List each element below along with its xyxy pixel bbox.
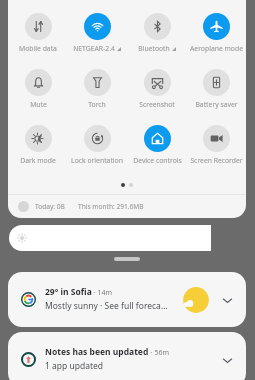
- staticText: 1 app updated: [45, 360, 104, 372]
- staticText: Screenshot: [139, 100, 175, 109]
- staticText: Mute: [30, 100, 47, 109]
- staticText: Notes has been updated: [45, 346, 149, 358]
- button[interactable]: Screen Recorder: [187, 125, 245, 165]
- staticText: Lock orientation: [71, 156, 123, 165]
- staticText: Device controls: [133, 156, 182, 165]
- button[interactable]: Lock orientation: [68, 125, 126, 165]
- button[interactable]: Torch: [68, 69, 126, 109]
- button[interactable]: 29° in Sofia: [8, 272, 246, 327]
- staticText: Torch: [88, 100, 106, 109]
- staticText: · 56m: [149, 348, 170, 358]
- button[interactable]: Aeroplane mode: [187, 13, 245, 53]
- button[interactable]: Battery saver: [187, 69, 245, 109]
- staticText: NETGEAR-2.4: [73, 44, 115, 53]
- staticText: 29° in Sofia: [45, 286, 92, 298]
- button[interactable]: Screenshot: [128, 69, 186, 109]
- staticText: Mobile data: [19, 44, 57, 53]
- staticText: Today: 0B: [35, 202, 65, 211]
- button[interactable]: Mobile data: [9, 13, 67, 53]
- button[interactable]: Expand: [218, 291, 236, 309]
- staticText: · 14m: [92, 288, 113, 298]
- staticText: This month: 291.6MB: [78, 202, 144, 211]
- staticText: Battery saver: [195, 100, 238, 109]
- button[interactable]: NETGEAR-2.4: [68, 13, 126, 53]
- staticText: Dark mode: [20, 156, 56, 165]
- button[interactable]: Mute: [9, 69, 67, 109]
- staticText: Bluetooth: [138, 44, 170, 53]
- button[interactable]: Notes has been updated: [8, 332, 246, 380]
- button[interactable]: Bluetooth: [128, 13, 186, 53]
- button[interactable]: Device controls: [128, 125, 186, 165]
- button[interactable]: Expand: [218, 351, 236, 369]
- staticText: Screen Recorder: [190, 156, 243, 165]
- staticText: Aeroplane mode: [190, 44, 243, 53]
- button[interactable]: Dark mode: [9, 125, 67, 165]
- staticText: Mostly sunny · See full foreca...: [45, 300, 168, 312]
- button[interactable]: [9, 225, 211, 251]
